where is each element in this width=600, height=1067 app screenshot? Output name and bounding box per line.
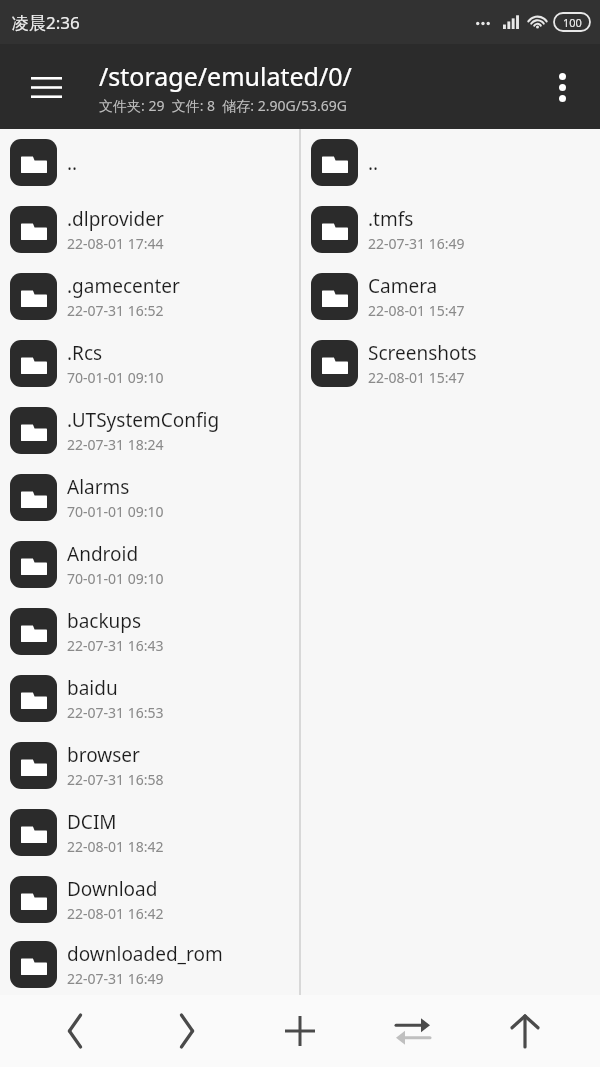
staticText: 22-08-01 16:42 [67, 904, 164, 923]
button[interactable]: .UTSystemConfig [0, 397, 299, 464]
staticText: 70-01-01 09:10 [67, 569, 164, 588]
button[interactable]: Transfer [375, 998, 451, 1064]
button[interactable]: .Rcs [0, 330, 299, 397]
button[interactable]: .. [301, 129, 600, 196]
staticText: .dlprovider [67, 206, 164, 232]
staticText: 70-01-01 09:10 [67, 368, 164, 387]
staticText: browser [67, 742, 140, 768]
staticText: .. [368, 150, 379, 176]
button[interactable]: .gamecenter [0, 263, 299, 330]
staticText: 22-07-31 16:43 [67, 636, 164, 655]
button[interactable]: .tmfs [301, 196, 600, 263]
button[interactable]: Alarms [0, 464, 299, 531]
staticText: downloaded_rom [67, 941, 223, 967]
staticText: .gamecenter [67, 273, 180, 299]
button[interactable]: Menu [18, 59, 74, 115]
button[interactable]: More options [538, 63, 586, 111]
button[interactable]: backups [0, 598, 299, 665]
button[interactable]: Forward [149, 998, 225, 1064]
button[interactable]: New [262, 998, 338, 1064]
staticText: Android [67, 541, 139, 567]
button[interactable]: Android [0, 531, 299, 598]
button[interactable]: Screenshots [301, 330, 600, 397]
staticText: 22-08-01 15:47 [368, 368, 465, 387]
staticText: Screenshots [368, 340, 477, 366]
button[interactable]: downloaded_rom [0, 933, 299, 995]
staticText: 文件夹: 29 文件: 8 储存: 2.90G/53.69G [99, 96, 347, 115]
staticText: 22-07-31 18:24 [67, 435, 164, 454]
button[interactable]: baidu [0, 665, 299, 732]
staticText: Download [67, 876, 158, 902]
button[interactable]: .. [0, 129, 299, 196]
staticText: Camera [368, 273, 438, 299]
staticText: 凌晨2:36 [12, 11, 80, 34]
button[interactable]: browser [0, 732, 299, 799]
button[interactable]: DCIM [0, 799, 299, 866]
staticText: 100 [563, 15, 582, 30]
staticText: 22-08-01 17:44 [67, 234, 164, 253]
staticText: 22-07-31 16:52 [67, 301, 164, 320]
button[interactable]: Up [487, 998, 563, 1064]
staticText: 22-07-31 16:53 [67, 703, 164, 722]
staticText: baidu [67, 675, 118, 701]
staticText: 70-01-01 09:10 [67, 502, 164, 521]
staticText: 22-07-31 16:49 [368, 234, 465, 253]
staticText: 22-08-01 18:42 [67, 837, 164, 856]
staticText: .UTSystemConfig [67, 407, 220, 433]
staticText: backups [67, 608, 142, 634]
staticText: .tmfs [368, 206, 414, 232]
staticText: DCIM [67, 809, 117, 835]
staticText: 22-07-31 16:58 [67, 770, 164, 789]
button[interactable]: Camera [301, 263, 600, 330]
staticText: /storage/emulated/0/ [99, 59, 352, 93]
staticText: Alarms [67, 474, 130, 500]
staticText: 22-08-01 15:47 [368, 301, 465, 320]
button[interactable]: .dlprovider [0, 196, 299, 263]
button[interactable]: Download [0, 866, 299, 933]
staticText: 22-07-31 16:49 [67, 969, 164, 988]
staticText: .Rcs [67, 340, 103, 366]
button[interactable]: Back [37, 998, 113, 1064]
staticText: .. [67, 150, 78, 176]
